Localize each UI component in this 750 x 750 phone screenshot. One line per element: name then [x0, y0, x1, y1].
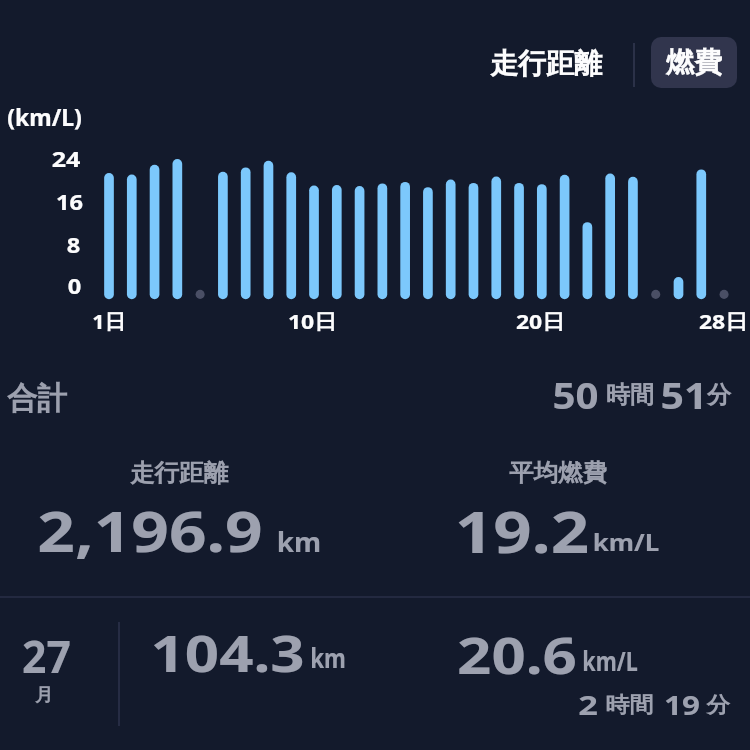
staticText: 分: [706, 691, 730, 718]
staticText: km: [310, 639, 346, 676]
staticText: 16: [56, 187, 83, 216]
staticText: 50: [552, 372, 599, 420]
staticText: (km/L): [7, 101, 82, 132]
button[interactable]: 燃費: [651, 37, 737, 88]
staticText: 平均燃費: [509, 458, 607, 488]
staticText: 燃費: [666, 45, 722, 80]
staticText: 2: [578, 686, 598, 723]
staticText: 走行距離: [130, 458, 228, 488]
staticText: 19.2: [455, 492, 589, 570]
staticText: 27: [22, 626, 71, 686]
staticText: 時間: [606, 380, 654, 410]
staticText: 合計: [7, 379, 67, 418]
staticText: 28日: [699, 308, 748, 335]
button[interactable]: 走行距離: [478, 36, 614, 91]
staticText: km/L: [582, 642, 638, 679]
staticText: 104.3: [150, 619, 305, 687]
staticText: 51: [660, 371, 708, 420]
staticText: 8: [66, 230, 81, 259]
staticText: km: [276, 523, 322, 560]
staticText: 分: [707, 380, 731, 410]
button[interactable]: 燃費の日別グラフ: [0, 100, 750, 340]
staticText: 24: [51, 143, 81, 173]
button[interactable]: 27日 月曜日の走行記録: [0, 598, 750, 750]
staticText: 走行距離: [490, 46, 602, 81]
staticText: 0: [67, 271, 82, 300]
staticText: 月: [35, 684, 53, 707]
staticText: 時間: [605, 691, 654, 718]
staticText: 19: [664, 686, 700, 723]
staticText: 1日: [92, 308, 126, 335]
staticText: 20.6: [457, 621, 577, 689]
staticText: km/L: [592, 525, 659, 558]
staticText: 2,196.9: [37, 492, 263, 568]
staticText: 10日: [288, 308, 337, 335]
staticText: 20日: [516, 308, 565, 335]
